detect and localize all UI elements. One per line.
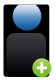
button[interactable]: Add contact [32,58,51,77]
button[interactable]: Contact [3,4,49,77]
